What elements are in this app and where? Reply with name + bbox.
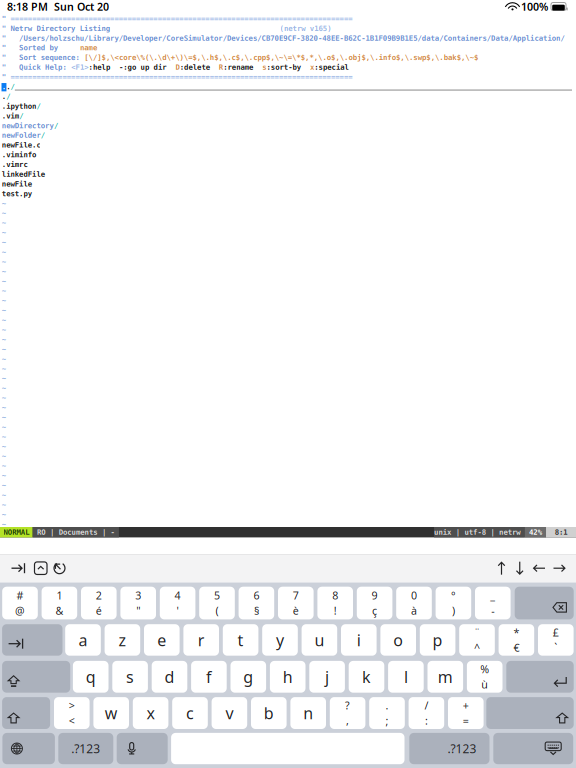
staticText: ~	[2, 325, 6, 334]
staticText: l	[404, 666, 408, 687]
button[interactable]	[486, 697, 574, 729]
button[interactable]: ?	[330, 697, 365, 729]
staticText: newFile	[2, 180, 32, 188]
staticText: ~	[2, 209, 6, 217]
button[interactable]: Control	[31, 554, 50, 582]
staticText: " /Users/holzschu/Library/Developer/Core…	[2, 34, 564, 42]
button[interactable]: f	[191, 661, 227, 693]
button[interactable]: _	[475, 587, 511, 619]
staticText: u	[314, 629, 324, 650]
button[interactable]: o	[380, 624, 416, 656]
staticText: " Netrw Directory Listing	[2, 24, 110, 33]
button[interactable]: Undo	[50, 554, 69, 582]
staticText: s	[126, 666, 134, 687]
button[interactable]: q	[73, 661, 108, 693]
button[interactable]: *	[499, 624, 534, 656]
button[interactable]: w	[93, 697, 129, 729]
staticText: linkedFile	[2, 170, 45, 178]
button[interactable]: 9	[357, 587, 392, 619]
staticText: b	[264, 702, 274, 724]
button[interactable]: c	[172, 697, 208, 729]
button[interactable]: 0	[396, 587, 432, 619]
button[interactable]: .?123	[58, 733, 113, 764]
button[interactable]: s	[112, 661, 148, 693]
staticText: .	[6, 82, 10, 91]
button[interactable]: Up	[492, 554, 510, 582]
button[interactable]: r	[183, 624, 219, 656]
button[interactable]: 5	[199, 587, 235, 619]
button[interactable]	[493, 730, 573, 767]
button[interactable]: /	[409, 697, 444, 729]
staticText: .viminfo	[2, 150, 36, 159]
button[interactable]: g	[230, 661, 266, 693]
button[interactable]: u	[302, 624, 337, 656]
staticText: d	[164, 666, 174, 687]
staticText: " Sort sequence:	[2, 53, 84, 62]
staticText: è	[293, 604, 299, 618]
button[interactable]: x	[133, 697, 168, 729]
staticText: ~	[2, 218, 6, 227]
button[interactable]: Tab	[5, 554, 31, 582]
button[interactable]: Right	[549, 554, 570, 582]
button[interactable]: >	[54, 697, 90, 729]
button[interactable]	[2, 661, 70, 693]
staticText: _	[490, 588, 495, 603]
staticText: Sun Oct 20	[54, 0, 109, 14]
button[interactable]: °	[436, 587, 471, 619]
button[interactable]: 8	[317, 587, 353, 619]
button[interactable]: #	[2, 587, 38, 619]
button[interactable]: h	[270, 661, 305, 693]
button[interactable]: Down	[510, 554, 529, 582]
button[interactable]: a	[65, 624, 101, 656]
button[interactable]	[2, 733, 55, 764]
button[interactable]: %	[467, 661, 502, 693]
button[interactable]: ¨	[459, 624, 495, 656]
button[interactable]: y	[262, 624, 298, 656]
button[interactable]: .	[369, 697, 405, 729]
staticText: name	[80, 44, 97, 52]
staticText: é	[96, 604, 102, 618]
button[interactable]: 2	[81, 587, 117, 619]
button[interactable]: k	[349, 661, 384, 693]
staticText: NORMAL	[3, 528, 29, 536]
button[interactable]: +	[448, 697, 484, 729]
staticText: <F1>	[71, 63, 88, 71]
staticText: v	[225, 702, 233, 724]
button[interactable]: d	[152, 661, 187, 693]
staticText: z	[118, 629, 126, 650]
button[interactable]: 4	[160, 587, 195, 619]
button[interactable]: l	[388, 661, 424, 693]
button[interactable]: 3	[120, 587, 156, 619]
button[interactable]: m	[427, 661, 463, 693]
staticText: .ipython	[2, 102, 36, 110]
staticText: RO | Documents | -	[33, 528, 119, 536]
staticText: @	[15, 604, 25, 618]
staticText: k	[362, 666, 371, 687]
button[interactable]: p	[420, 624, 455, 656]
staticText: 5	[214, 588, 220, 603]
button[interactable]: 6	[239, 587, 274, 619]
button[interactable]: z	[105, 624, 140, 656]
button[interactable]: i	[341, 624, 377, 656]
staticText: 100%	[518, 0, 551, 14]
button[interactable]: t	[223, 624, 258, 656]
button[interactable]: n	[290, 697, 326, 729]
button[interactable]: Left	[529, 554, 549, 582]
button[interactable]: v	[212, 697, 247, 729]
button[interactable]: 1	[42, 587, 77, 619]
button[interactable]	[2, 697, 50, 729]
button[interactable]	[117, 731, 168, 765]
button[interactable]	[506, 661, 574, 693]
button[interactable]: e	[144, 624, 180, 656]
staticText: &	[55, 604, 63, 618]
staticText: p	[433, 629, 443, 650]
button[interactable]: b	[251, 697, 287, 729]
button[interactable]: £	[538, 624, 574, 656]
button[interactable]: .?123	[409, 728, 489, 768]
button[interactable]	[2, 624, 62, 656]
button[interactable]: j	[309, 661, 345, 693]
staticText: r	[198, 629, 205, 650]
button[interactable]	[515, 587, 574, 619]
button[interactable]: 7	[278, 587, 314, 619]
